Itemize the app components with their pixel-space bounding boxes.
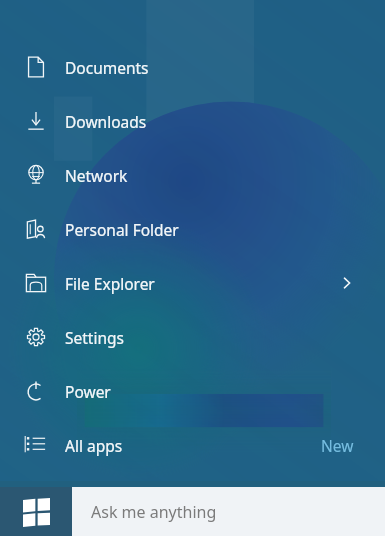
staticText: Settings [65, 327, 124, 348]
button[interactable]: Settings [0, 310, 385, 364]
button[interactable]: All apps [0, 418, 385, 472]
staticText: Documents [65, 57, 149, 78]
staticText: Downloads [65, 111, 147, 132]
button[interactable]: Downloads [0, 94, 385, 148]
staticText: Ask me anything [91, 501, 217, 523]
button[interactable]: Network [0, 148, 385, 202]
button[interactable]: Personal Folder [0, 202, 385, 256]
button[interactable]: Power [0, 364, 385, 418]
staticText: Power [65, 381, 111, 402]
button[interactable]: Start [0, 487, 72, 536]
button[interactable]: File Explorer [0, 256, 385, 310]
staticText: File Explorer [65, 273, 155, 294]
staticText: Network [65, 165, 128, 186]
button[interactable]: Documents [0, 40, 385, 94]
button[interactable]: Ask me anything [72, 487, 385, 536]
staticText: New [321, 435, 354, 456]
staticText: Personal Folder [65, 219, 179, 240]
staticText: All apps [65, 435, 123, 456]
